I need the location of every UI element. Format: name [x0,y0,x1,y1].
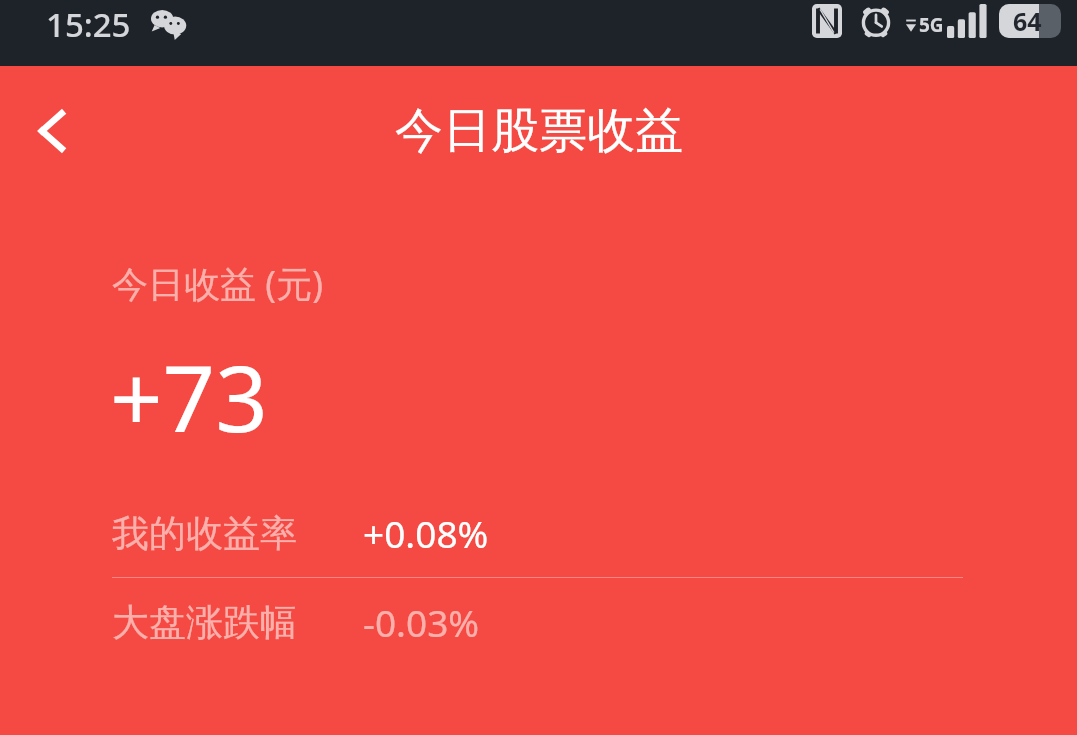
staticText: 我的收益率 [112,510,297,557]
button[interactable]: Back [14,89,98,173]
staticText: 今日收益 (元) [112,259,323,308]
button[interactable]: 大盘涨跌幅 [0,578,1077,666]
button[interactable]: 我的收益率 [0,489,1077,577]
staticText: 5G [919,12,944,38]
staticText: 今日股票收益 [395,101,683,161]
staticText: +73 [110,334,268,459]
staticText: 15:25 [46,2,131,47]
staticText: 大盘涨跌幅 [112,599,297,646]
staticText: 64 [1013,4,1042,38]
staticText: -0.03% [363,597,480,647]
staticText: +0.08% [363,508,489,558]
